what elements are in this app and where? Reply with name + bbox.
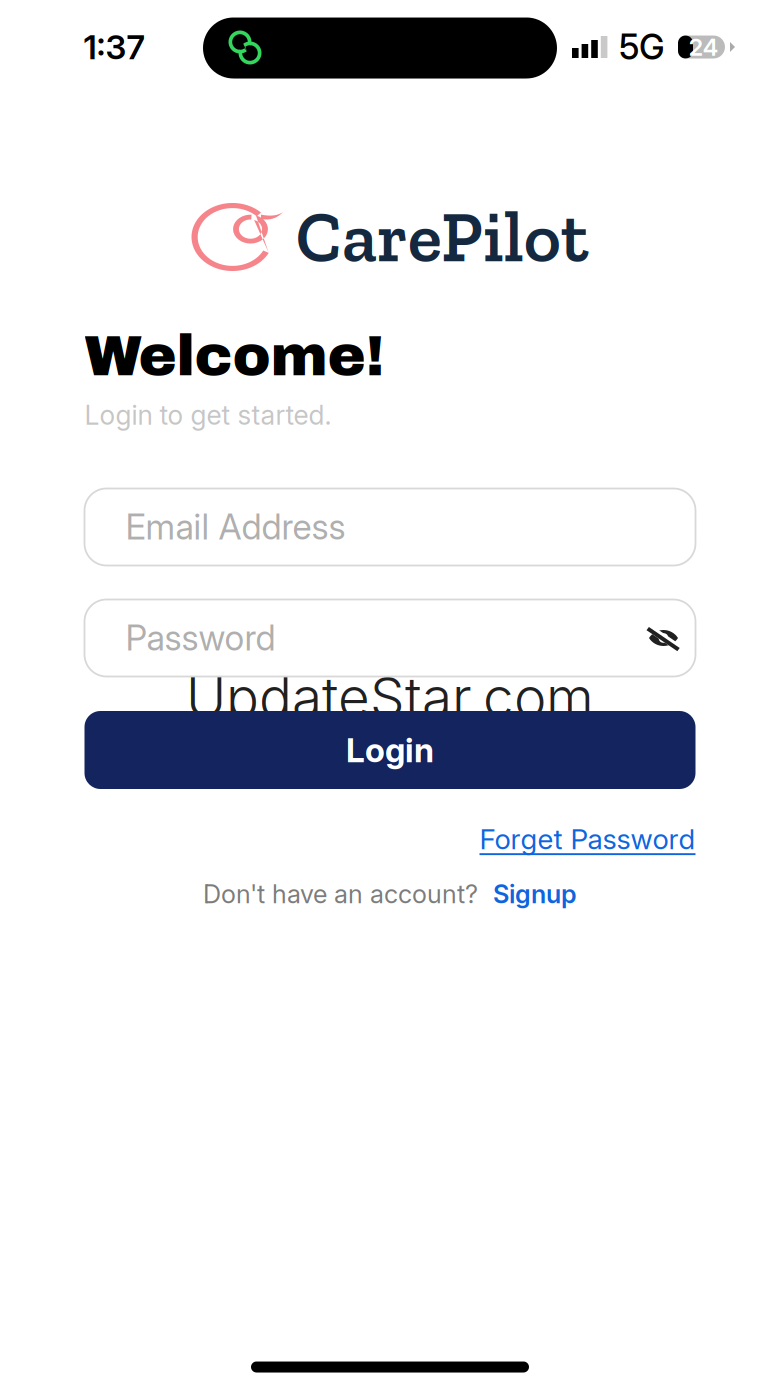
button[interactable]: Forget Password: [479, 822, 695, 856]
staticText: Don't have an account?: [203, 879, 478, 909]
button[interactable]: Email Address: [84, 488, 695, 565]
button[interactable]: Signup: [493, 879, 577, 909]
staticText: 24: [688, 32, 718, 61]
staticText: UpdateStar.com: [186, 664, 594, 730]
button[interactable]: Password: [84, 599, 695, 676]
staticText: 5G: [619, 26, 665, 68]
staticText: Email Address: [125, 506, 345, 548]
staticText: Signup: [493, 879, 577, 909]
staticText: Login to get started.: [84, 399, 331, 431]
staticText: Forget Password: [479, 822, 695, 856]
staticText: CarePilot: [296, 195, 588, 279]
staticText: Password: [125, 617, 275, 659]
staticText: 1:37: [83, 27, 144, 67]
button[interactable]: Login: [84, 711, 695, 789]
staticText: Welcome!: [84, 325, 384, 387]
staticText: Login: [346, 730, 434, 770]
